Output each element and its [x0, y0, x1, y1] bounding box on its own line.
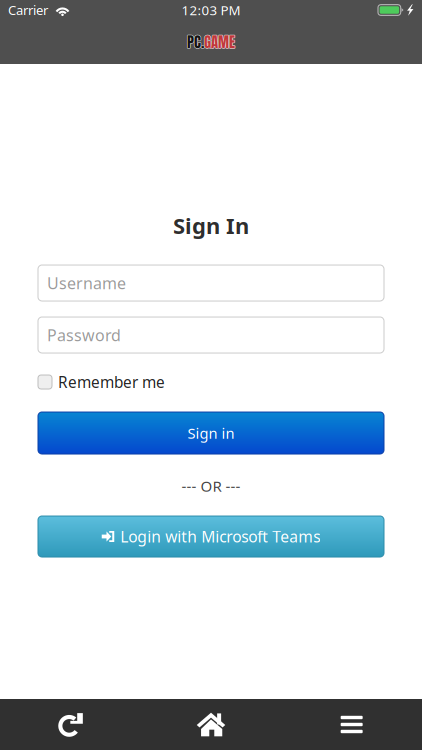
- staticText: PC.: [187, 30, 204, 53]
- staticText: 12:03 PM: [181, 1, 240, 19]
- staticText: Username: [47, 272, 126, 294]
- staticText: GAME: [204, 31, 235, 53]
- staticText: GAME: [204, 30, 235, 53]
- button[interactable]: Sign in: [0, 412, 422, 454]
- staticText: Sign In: [173, 210, 249, 240]
- staticText: Remember me: [58, 372, 165, 392]
- staticText: PC.: [187, 31, 204, 53]
- staticText: Sign in: [187, 423, 234, 443]
- button[interactable]: Home: [141, 699, 281, 750]
- staticText: PC.: [186, 31, 203, 53]
- staticText: Carrier: [8, 1, 48, 19]
- staticText: GAME: [204, 31, 235, 53]
- staticText: Password: [47, 324, 121, 346]
- button[interactable]: Menu: [281, 699, 422, 750]
- button[interactable]: Login with Microsoft Teams: [0, 516, 422, 557]
- staticText: PC.: [187, 31, 204, 53]
- staticText: PC.: [187, 31, 204, 54]
- staticText: Login with Microsoft Teams: [120, 526, 320, 547]
- button[interactable]: Reload: [0, 699, 141, 750]
- staticText: GAME: [204, 31, 235, 54]
- staticText: --- OR ---: [181, 476, 240, 496]
- button[interactable]: Remember me: [0, 375, 422, 389]
- staticText: GAME: [203, 31, 234, 53]
